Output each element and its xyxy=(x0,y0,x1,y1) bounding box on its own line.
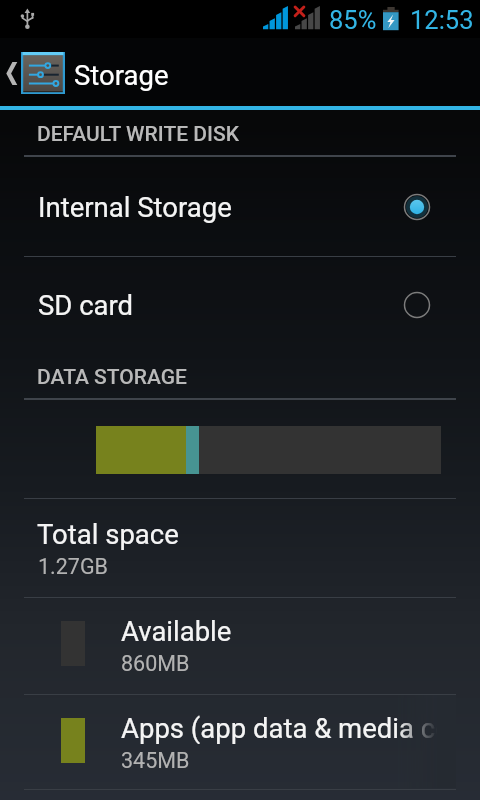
staticText: SD card xyxy=(38,289,134,321)
staticText: 345MB xyxy=(121,748,190,773)
button[interactable]: Selected xyxy=(397,187,437,227)
staticText: DATA STORAGE xyxy=(37,365,187,390)
staticText: Apps (app data & media content) xyxy=(121,712,441,744)
staticText: 12:53 xyxy=(410,5,474,35)
button[interactable] xyxy=(0,498,480,597)
button[interactable] xyxy=(0,156,480,257)
button[interactable] xyxy=(0,597,480,695)
button[interactable] xyxy=(0,256,480,353)
staticText: DEFAULT WRITE DISK xyxy=(37,122,239,147)
staticText: Internal Storage xyxy=(38,191,232,223)
staticText: Storage xyxy=(74,59,169,91)
button[interactable]: Navigate up xyxy=(0,38,67,106)
staticText: 1.27GB xyxy=(38,554,108,579)
staticText: Total space xyxy=(37,518,179,550)
staticText: 85% xyxy=(329,5,377,35)
button[interactable]: Not selected xyxy=(397,285,437,325)
button[interactable] xyxy=(0,694,480,789)
staticText: 860MB xyxy=(121,651,190,676)
staticText: Available xyxy=(121,615,232,647)
